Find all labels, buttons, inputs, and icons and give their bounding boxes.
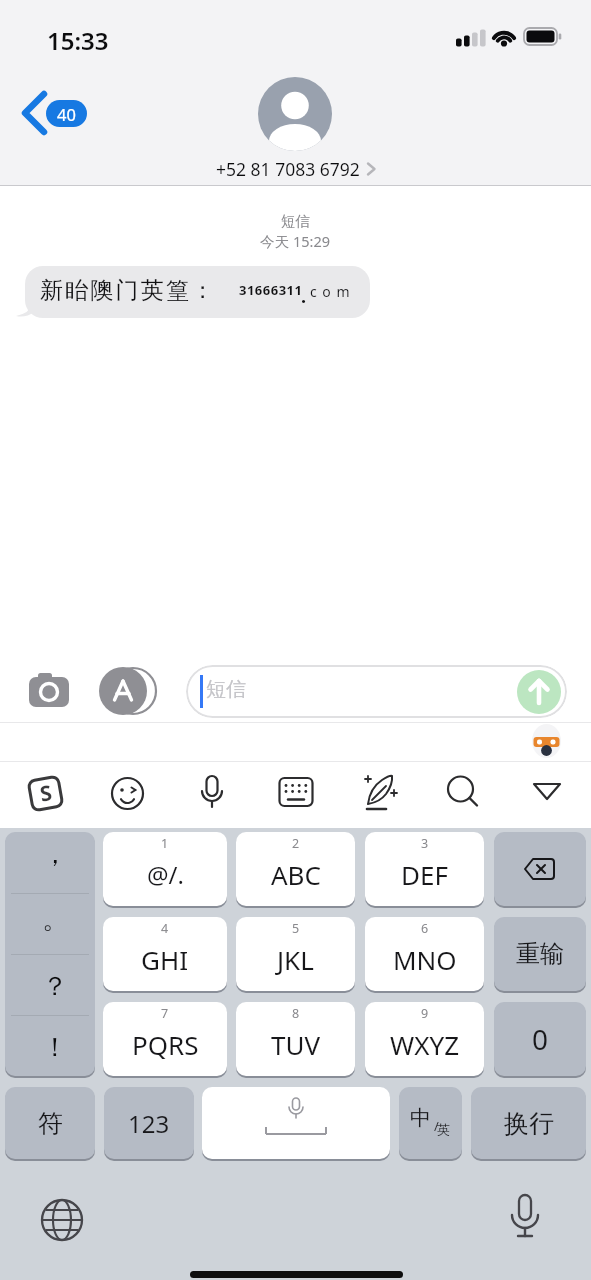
button[interactable]: S	[26, 774, 64, 812]
staticText: 中	[410, 1105, 431, 1131]
staticText: ABC	[271, 857, 321, 892]
staticText: 15:29	[293, 231, 331, 251]
staticText: 7	[161, 1005, 169, 1022]
staticText: 15:33	[47, 24, 109, 57]
button[interactable]: ，	[5, 832, 95, 1078]
staticText: 符	[38, 1108, 63, 1139]
button[interactable]	[109, 775, 146, 812]
button[interactable]: 短信	[186, 665, 567, 718]
staticText: 2	[292, 835, 300, 852]
button[interactable]	[503, 1192, 547, 1248]
button[interactable]	[531, 780, 565, 806]
button[interactable]	[258, 77, 332, 151]
staticText: 今天	[260, 231, 293, 251]
button[interactable]	[202, 1087, 390, 1161]
staticText: 。	[42, 903, 68, 936]
staticText: S	[38, 778, 54, 809]
staticText: WXYZ	[390, 1027, 460, 1062]
staticText: 6	[421, 920, 429, 937]
button[interactable]: 新眙隩门英篁：	[25, 266, 370, 318]
button[interactable]: 2	[236, 832, 355, 908]
button[interactable]	[278, 776, 315, 810]
staticText: @/.	[147, 858, 184, 891]
button[interactable]: 重输	[494, 917, 586, 993]
button[interactable]: 符	[5, 1087, 95, 1161]
staticText: +52 81 7083 6792	[216, 157, 360, 181]
button[interactable]	[99, 667, 161, 715]
staticText: 新眙隩门英篁：	[40, 276, 217, 305]
staticText: 8	[292, 1005, 300, 1022]
staticText: 40	[57, 103, 76, 125]
button[interactable]: 123	[104, 1087, 194, 1161]
staticText: GHI	[141, 942, 189, 977]
button[interactable]: 换行	[471, 1087, 586, 1161]
staticText: DEF	[401, 857, 448, 892]
button[interactable]	[360, 772, 400, 814]
staticText: 0	[532, 1020, 549, 1058]
button[interactable]	[444, 774, 482, 812]
button[interactable]: 9	[365, 1002, 484, 1078]
button[interactable]	[494, 832, 586, 908]
staticText: c o m	[310, 282, 351, 301]
button[interactable]: 5	[236, 917, 355, 993]
button[interactable]	[16, 88, 56, 138]
staticText: 31666311	[239, 281, 303, 299]
button[interactable]: 8	[236, 1002, 355, 1078]
staticText: 5	[292, 920, 300, 937]
staticText: PQRS	[132, 1027, 199, 1062]
button[interactable]	[194, 773, 230, 815]
staticText: 英	[437, 1121, 450, 1137]
staticText: ·	[301, 289, 307, 314]
staticText: 4	[161, 920, 169, 937]
staticText: 短信	[281, 212, 310, 230]
button[interactable]: 7	[103, 1002, 227, 1078]
staticText: /	[434, 1117, 439, 1135]
staticText: 短信	[206, 677, 246, 702]
button[interactable]: 6	[365, 917, 484, 993]
button[interactable]: 40	[46, 100, 87, 127]
button[interactable]: +52 81 7083 6792	[216, 157, 376, 181]
staticText: MNO	[393, 942, 457, 977]
staticText: TUV	[271, 1027, 321, 1062]
staticText: 3	[421, 835, 429, 852]
button[interactable]: 中	[399, 1087, 462, 1161]
button[interactable]	[38, 1196, 86, 1244]
staticText: ？	[42, 970, 68, 1003]
staticText: ！	[42, 1031, 68, 1064]
staticText: 换行	[504, 1108, 554, 1139]
button[interactable]	[531, 724, 563, 759]
staticText: ，	[42, 838, 68, 871]
button[interactable]	[517, 670, 561, 714]
staticText: 重输	[516, 939, 564, 969]
staticText: 1	[161, 835, 169, 852]
button[interactable]: 0	[494, 1002, 586, 1078]
staticText: 123	[128, 1107, 170, 1140]
button[interactable]	[26, 668, 74, 714]
staticText: 9	[421, 1005, 429, 1022]
button[interactable]: 1	[103, 832, 227, 908]
staticText: JKL	[277, 942, 314, 977]
button[interactable]: 3	[365, 832, 484, 908]
button[interactable]: 4	[103, 917, 227, 993]
